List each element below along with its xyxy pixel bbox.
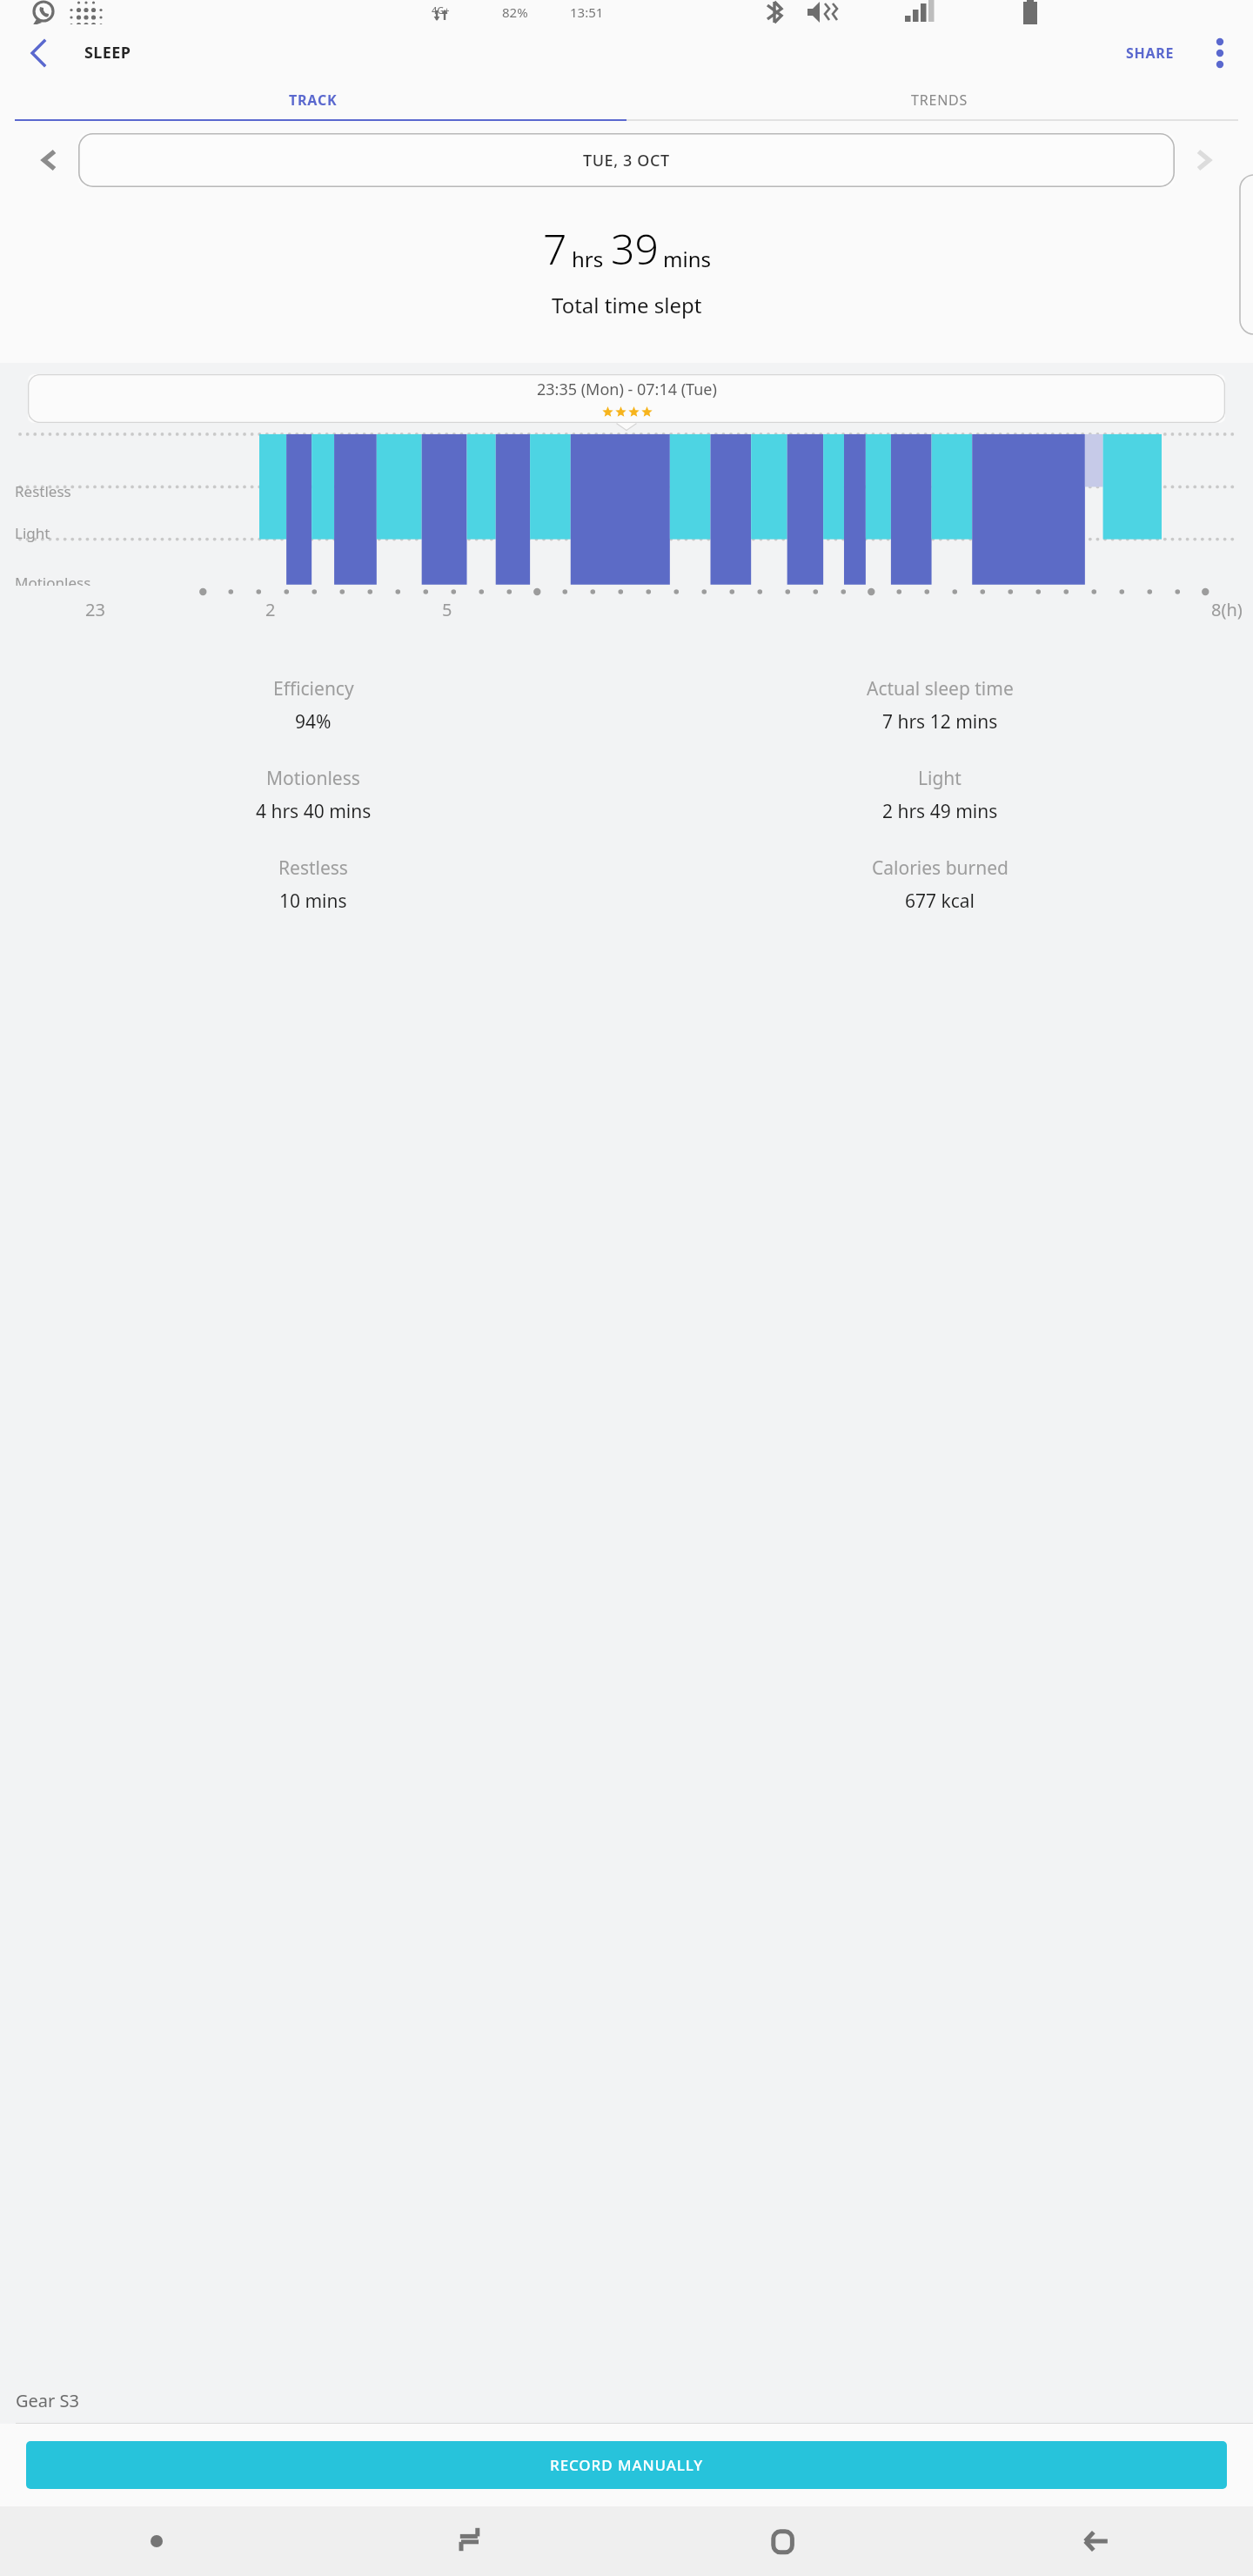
- button[interactable]: More options: [1197, 30, 1243, 76]
- button[interactable]: Back: [940, 2506, 1253, 2576]
- staticText: Restless: [15, 481, 71, 501]
- staticText: 8(h): [1211, 598, 1243, 621]
- button[interactable]: Home: [626, 2506, 940, 2576]
- staticText: Efficiency: [273, 676, 354, 701]
- staticText: 4 hrs 40 mins: [256, 799, 372, 824]
- staticText: 39: [611, 220, 659, 277]
- button[interactable]: TRENDS: [626, 81, 1253, 119]
- staticText: TRACK: [289, 91, 338, 110]
- staticText: Gear S3: [16, 2389, 79, 2412]
- button[interactable]: SHARE: [1119, 37, 1182, 70]
- staticText: Calories burned: [872, 855, 1008, 881]
- staticText: 2: [265, 598, 276, 621]
- staticText: Light: [15, 523, 50, 543]
- button[interactable]: Calories burned: [626, 855, 1253, 914]
- button[interactable]: Motionless: [0, 766, 626, 824]
- staticText: 82%: [502, 3, 528, 21]
- staticText: Motionless: [15, 573, 91, 586]
- button[interactable]: Back: [17, 32, 59, 74]
- button[interactable]: RECORD MANUALLY: [26, 2441, 1227, 2489]
- button[interactable]: Menu: [0, 2506, 313, 2576]
- button[interactable]: Restless: [0, 855, 626, 914]
- staticText: TUE, 3 OCT: [583, 150, 670, 171]
- staticText: mins: [663, 245, 711, 273]
- staticText: hrs: [572, 245, 604, 273]
- button[interactable]: Efficiency: [0, 676, 626, 735]
- button[interactable]: Next day: [1180, 137, 1227, 184]
- staticText: RECORD MANUALLY: [550, 2455, 704, 2475]
- staticText: TRENDS: [911, 91, 968, 110]
- button[interactable]: TRACK: [0, 81, 626, 119]
- staticText: 94%: [295, 709, 332, 735]
- staticText: 677 kcal: [905, 889, 975, 914]
- button[interactable]: Actual sleep time: [626, 676, 1253, 735]
- staticText: 23:35 (Mon) - 07:14 (Tue): [537, 379, 717, 400]
- staticText: 7: [543, 220, 567, 277]
- button[interactable]: TUE, 3 OCT: [78, 133, 1175, 187]
- staticText: 10 mins: [279, 889, 347, 914]
- staticText: SHARE: [1126, 44, 1175, 63]
- button[interactable]: Recents: [313, 2506, 626, 2576]
- button[interactable]: Previous day: [26, 137, 73, 184]
- button[interactable]: Light: [626, 766, 1253, 824]
- staticText: 4G+: [432, 3, 450, 17]
- staticText: Restless: [278, 855, 348, 881]
- staticText: Light: [918, 766, 962, 791]
- staticText: 13:51: [570, 3, 604, 21]
- staticText: 2 hrs 49 mins: [882, 799, 998, 824]
- staticText: 5: [442, 598, 452, 621]
- staticText: Total time slept: [552, 291, 702, 319]
- staticText: 7 hrs 12 mins: [882, 709, 998, 735]
- staticText: 23: [85, 598, 105, 621]
- staticText: Motionless: [266, 766, 360, 791]
- staticText: SLEEP: [84, 42, 131, 64]
- staticText: Actual sleep time: [867, 676, 1014, 701]
- button[interactable]: 23:35 (Mon) - 07:14 (Tue): [28, 374, 1225, 423]
